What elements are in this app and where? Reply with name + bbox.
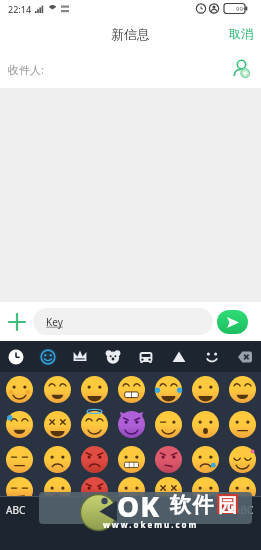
button[interactable] bbox=[113, 407, 150, 442]
button[interactable] bbox=[150, 372, 187, 407]
button[interactable] bbox=[113, 372, 150, 407]
button[interactable] bbox=[224, 407, 261, 442]
staticText: www.okemu.com bbox=[103, 519, 199, 530]
button[interactable] bbox=[113, 477, 150, 496]
button[interactable] bbox=[113, 442, 150, 477]
button[interactable] bbox=[228, 341, 261, 372]
button[interactable] bbox=[162, 341, 195, 372]
button[interactable] bbox=[76, 477, 113, 496]
button[interactable] bbox=[217, 310, 248, 334]
staticText: 取消 bbox=[229, 26, 253, 41]
button[interactable] bbox=[0, 341, 32, 372]
button[interactable]: Key bbox=[33, 308, 213, 335]
button[interactable] bbox=[150, 407, 187, 442]
button[interactable] bbox=[231, 59, 251, 79]
button[interactable] bbox=[187, 477, 224, 496]
button[interactable]: ABC bbox=[6, 503, 26, 517]
staticText: 99+ bbox=[236, 5, 247, 13]
staticText: ABC bbox=[234, 503, 254, 517]
staticText: 新信息 bbox=[111, 26, 150, 42]
button[interactable] bbox=[224, 442, 261, 477]
button[interactable] bbox=[38, 442, 76, 477]
button[interactable] bbox=[150, 442, 187, 477]
button[interactable] bbox=[76, 372, 113, 407]
staticText: 软件 bbox=[169, 492, 214, 518]
staticText: ABC bbox=[6, 503, 26, 517]
button[interactable] bbox=[96, 341, 129, 372]
button[interactable]: 收件人: bbox=[0, 50, 261, 88]
button[interactable] bbox=[187, 407, 224, 442]
staticText: 园 bbox=[218, 494, 237, 518]
button[interactable] bbox=[32, 341, 64, 372]
button[interactable] bbox=[0, 407, 38, 442]
button[interactable] bbox=[195, 341, 228, 372]
button[interactable] bbox=[187, 442, 224, 477]
button[interactable] bbox=[38, 372, 76, 407]
staticText: 收件人: bbox=[8, 62, 44, 77]
button[interactable] bbox=[0, 302, 33, 341]
staticText: Key bbox=[46, 315, 63, 329]
button[interactable]: ABC bbox=[234, 503, 254, 517]
button[interactable] bbox=[76, 442, 113, 477]
button[interactable] bbox=[224, 477, 261, 496]
staticText: 22:14 bbox=[8, 3, 32, 15]
button[interactable]: 取消 bbox=[221, 20, 261, 47]
button[interactable] bbox=[224, 372, 261, 407]
button[interactable] bbox=[0, 372, 38, 407]
button[interactable] bbox=[38, 407, 76, 442]
staticText: OK bbox=[117, 487, 161, 525]
button[interactable] bbox=[0, 477, 38, 496]
button[interactable] bbox=[129, 341, 162, 372]
button[interactable] bbox=[76, 407, 113, 442]
button[interactable] bbox=[0, 442, 38, 477]
button[interactable] bbox=[38, 477, 76, 496]
button[interactable] bbox=[150, 477, 187, 496]
button[interactable] bbox=[64, 341, 96, 372]
button[interactable] bbox=[187, 372, 224, 407]
